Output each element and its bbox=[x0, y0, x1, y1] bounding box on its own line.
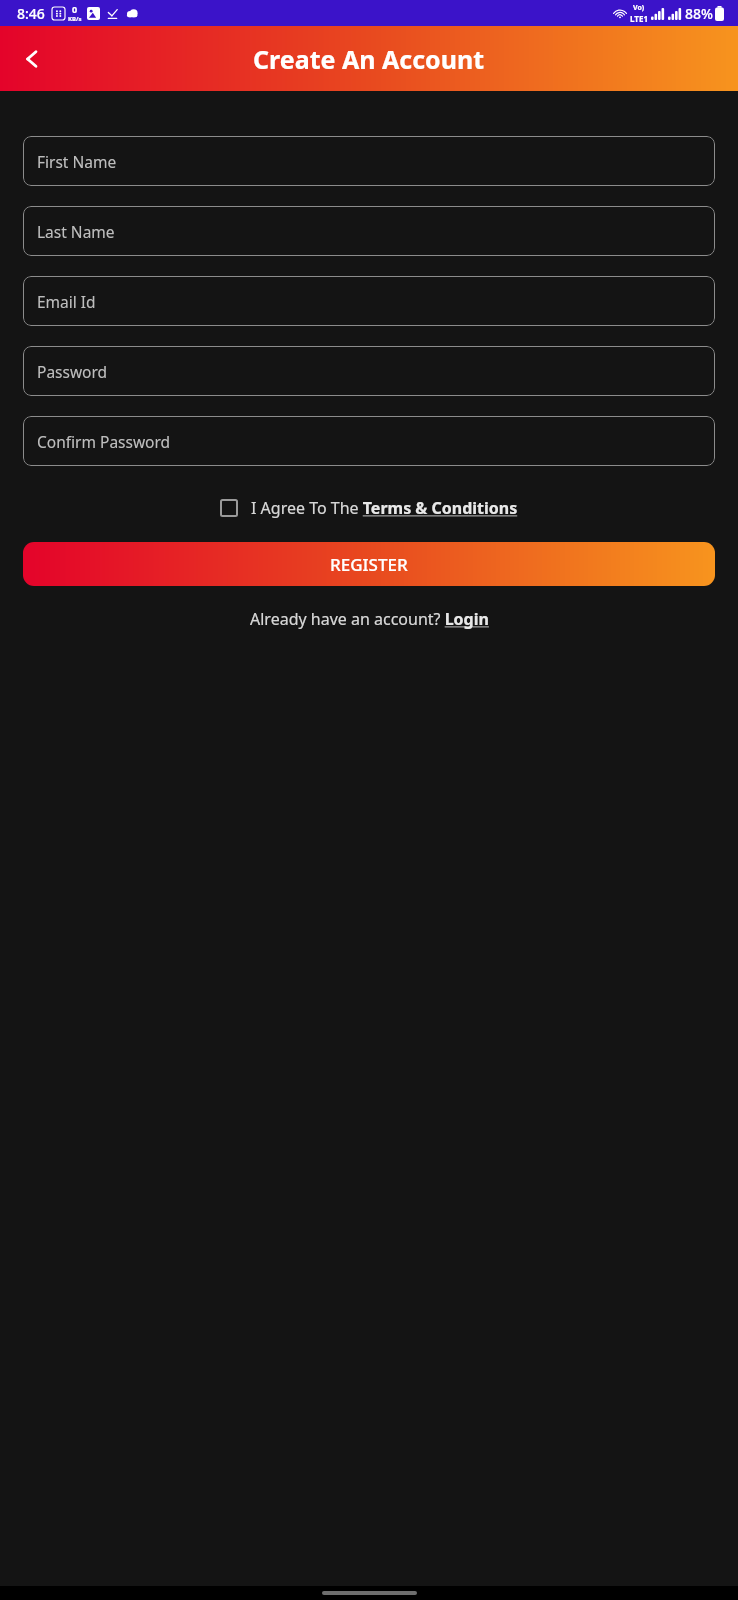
staticText: LTE1 bbox=[630, 13, 648, 24]
button[interactable]: Confirm Password bbox=[23, 416, 715, 466]
staticText: Create An Account bbox=[253, 42, 485, 76]
staticText: Confirm Password bbox=[37, 431, 171, 452]
staticText: First Name bbox=[37, 151, 117, 172]
button[interactable]: First Name bbox=[23, 136, 715, 186]
button[interactable]: Email Id bbox=[23, 276, 715, 326]
button[interactable]: I Agree To The Terms & Conditions bbox=[251, 497, 518, 519]
button[interactable]: Last Name bbox=[23, 206, 715, 256]
staticText: Last Name bbox=[37, 221, 115, 242]
staticText: 88% bbox=[685, 4, 713, 23]
staticText: Already have an account? Login bbox=[250, 608, 489, 630]
staticText: 0 bbox=[72, 3, 78, 15]
staticText: Vo) bbox=[633, 3, 645, 13]
staticText: Email Id bbox=[37, 291, 96, 312]
button[interactable]: I agree to the terms and conditions chec… bbox=[220, 499, 238, 517]
button[interactable]: Password bbox=[23, 346, 715, 396]
staticText: I Agree To The Terms & Conditions bbox=[251, 497, 518, 519]
button[interactable]: Back bbox=[8, 35, 56, 83]
staticText: 8:46 bbox=[17, 4, 45, 23]
staticText: Password bbox=[37, 361, 108, 382]
staticText: KB/s bbox=[68, 15, 82, 23]
button[interactable]: Already have an account? Login bbox=[250, 608, 489, 630]
staticText: REGISTER bbox=[330, 553, 408, 576]
button[interactable]: REGISTER bbox=[23, 542, 715, 586]
